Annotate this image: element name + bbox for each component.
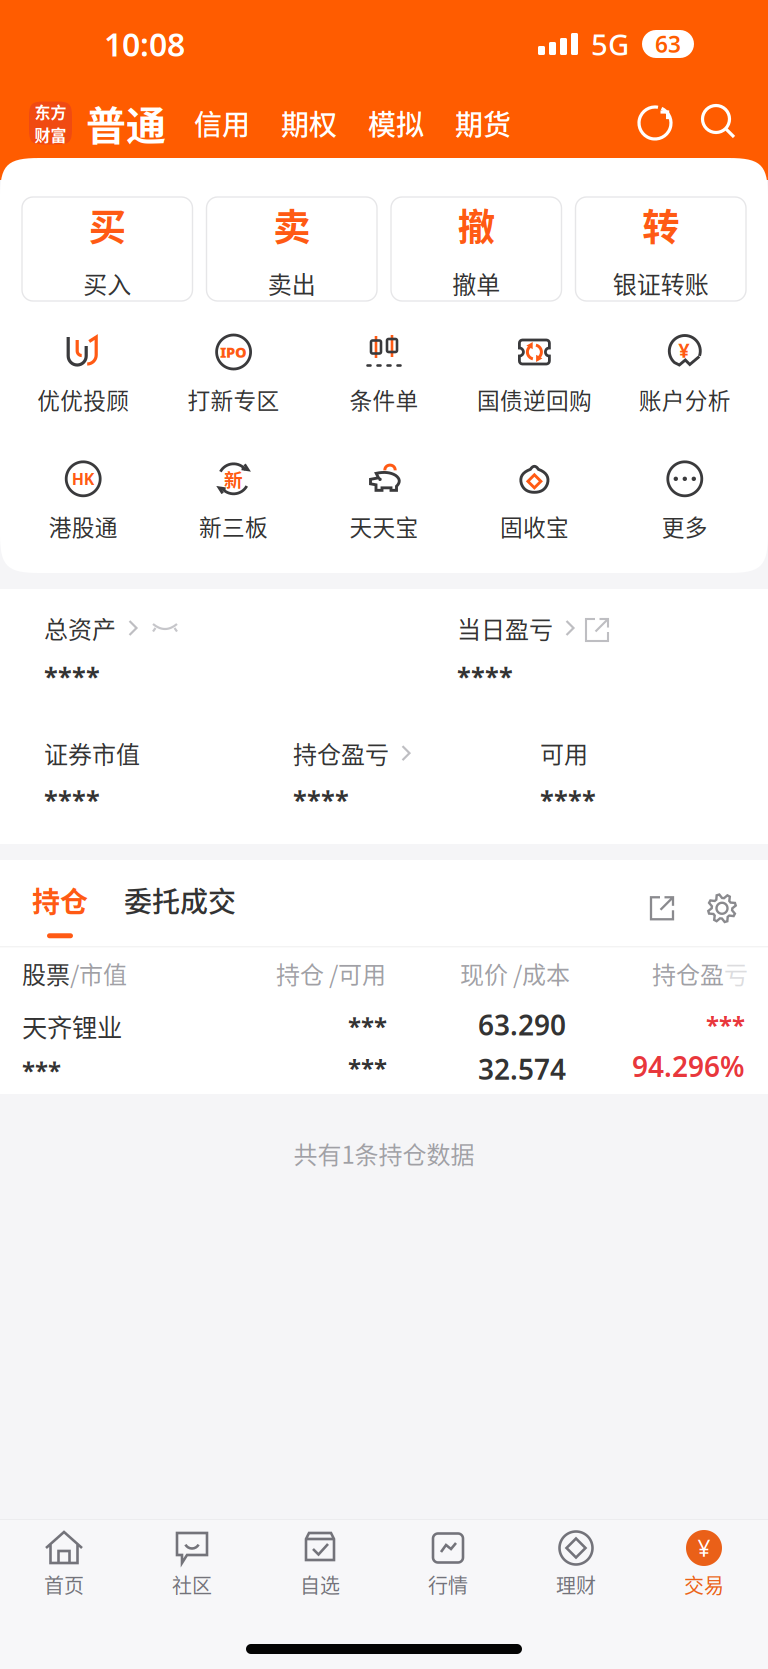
staticText: 现价 /成本 (460, 956, 570, 991)
staticText: 国债逆回购 (477, 383, 592, 416)
staticText: 模拟 (368, 103, 424, 143)
staticText: 持仓 /可用 (276, 956, 386, 991)
button[interactable]: 自选 (256, 1530, 384, 1610)
staticText: IPO (220, 342, 247, 362)
staticText: 首页 (44, 1570, 84, 1599)
staticText: 持仓盈亏 (293, 736, 389, 771)
button[interactable]: 买 (22, 197, 192, 301)
staticText: 卖 (273, 198, 310, 252)
staticText: 天齐锂业 (22, 1007, 122, 1044)
staticText: 委托成交 (124, 880, 236, 920)
staticText: 东方 (34, 100, 66, 123)
button[interactable]: 理财 (512, 1530, 640, 1610)
staticText: 撤单 (452, 266, 500, 300)
staticText: 94.296% (632, 1048, 745, 1085)
staticText: 港股通 (49, 510, 118, 543)
staticText: 总资产 (44, 611, 116, 645)
button[interactable]: 委托成交 (88, 880, 236, 938)
button[interactable]: HK (8, 460, 158, 543)
button[interactable]: 条件单 (309, 333, 459, 416)
staticText: 期货 (455, 103, 511, 143)
staticText: 优优投顾 (37, 383, 129, 416)
button[interactable]: 天天宝 (309, 460, 459, 543)
staticText: **** (44, 783, 100, 816)
staticText: 期权 (281, 103, 337, 143)
staticText: 股票 (22, 956, 70, 991)
staticText: 亏 (724, 956, 748, 991)
staticText: 交易 (684, 1570, 724, 1599)
staticText: 账户分析 (639, 383, 731, 416)
staticText: 当日盈亏 (457, 611, 553, 645)
staticText: *** (22, 1054, 61, 1086)
button[interactable]: 转 (575, 197, 746, 301)
staticText: ¥ (678, 337, 689, 363)
staticText: *** (348, 1052, 387, 1084)
staticText: 打新专区 (188, 383, 280, 416)
button[interactable]: 更多 (610, 460, 760, 543)
staticText: **** (44, 659, 100, 693)
staticText: *** (706, 1009, 745, 1041)
staticText: 63 (655, 29, 681, 59)
staticText: 社区 (172, 1570, 212, 1599)
staticText: 固收宝 (500, 510, 569, 543)
staticText: 撤 (458, 198, 495, 252)
staticText: 理财 (556, 1570, 596, 1599)
staticText: 32.574 (478, 1050, 566, 1087)
button[interactable]: Open (648, 894, 676, 922)
staticText: 10:08 (104, 23, 185, 65)
button[interactable]: 优优投顾 (8, 333, 158, 416)
staticText: 5G (591, 24, 629, 63)
button[interactable]: 行情 (384, 1530, 512, 1610)
staticText: 买 (89, 198, 126, 252)
staticText: 新 (224, 465, 243, 492)
staticText: **** (457, 659, 513, 693)
staticText: 卖出 (268, 266, 316, 300)
staticText: /市值 (70, 956, 127, 991)
button[interactable]: 固收宝 (459, 460, 610, 543)
staticText: 财富 (34, 123, 66, 146)
button[interactable]: 撤 (391, 197, 561, 301)
button[interactable]: Refresh (636, 103, 676, 143)
staticText: 共有1条持仓数据 (293, 1136, 474, 1171)
staticText: 天天宝 (349, 510, 418, 543)
button[interactable]: IPO (158, 333, 309, 416)
staticText: 银证转账 (613, 266, 709, 300)
staticText: 证券市值 (44, 736, 140, 771)
staticText: 63.290 (478, 1006, 566, 1043)
staticText: 持仓 (32, 880, 88, 920)
staticText: 自选 (300, 1570, 340, 1599)
staticText: **** (540, 783, 596, 816)
staticText: **** (293, 783, 349, 816)
staticText: 可用 (540, 736, 588, 771)
button[interactable]: 持仓 (32, 880, 88, 938)
staticText: 新三板 (199, 510, 268, 543)
staticText: 转 (642, 198, 679, 252)
button[interactable]: 国债逆回购 (459, 333, 610, 416)
button[interactable]: Settings (706, 892, 738, 924)
button[interactable]: 首页 (0, 1530, 128, 1610)
staticText: *** (348, 1010, 387, 1042)
staticText: 更多 (662, 510, 708, 543)
button[interactable]: 社区 (128, 1530, 256, 1610)
staticText: 买入 (83, 266, 131, 300)
staticText: 持仓盈 (652, 956, 724, 991)
staticText: HK (72, 468, 95, 489)
button[interactable]: ¥ (640, 1530, 768, 1610)
button[interactable]: ¥ (610, 333, 760, 416)
staticText: 信用 (194, 103, 250, 143)
button[interactable]: 卖 (206, 197, 377, 301)
staticText: 行情 (428, 1570, 468, 1599)
button[interactable]: Search (699, 103, 739, 143)
staticText: ¥ (697, 1533, 710, 1563)
staticText: 普通 (86, 94, 166, 152)
button[interactable]: 新 (158, 460, 309, 543)
staticText: 条件单 (349, 383, 418, 416)
button[interactable]: 天齐锂业 (0, 999, 768, 1094)
